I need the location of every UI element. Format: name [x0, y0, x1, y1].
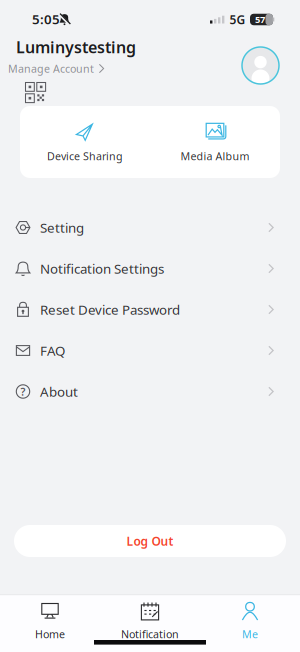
button[interactable]: Me	[203, 598, 297, 644]
staticText: FAQ	[40, 342, 65, 359]
staticText: Device Sharing	[47, 149, 123, 163]
staticText: About	[40, 383, 78, 400]
staticText: Me	[242, 627, 258, 641]
button[interactable]: QR code	[24, 81, 46, 103]
staticText: Notification Settings	[40, 260, 164, 277]
button[interactable]: Device Sharing	[30, 110, 140, 174]
button[interactable]: Manage Account	[8, 61, 104, 76]
staticText: Manage Account	[8, 61, 94, 76]
staticText: Reset Device Password	[40, 301, 180, 318]
staticText: Log Out	[126, 533, 173, 549]
button[interactable]: Media Album	[160, 110, 270, 174]
button[interactable]: Notification Settings	[0, 248, 300, 289]
button[interactable]: Profile photo	[241, 46, 279, 84]
staticText: 5:05	[32, 10, 60, 28]
staticText: ?	[20, 384, 25, 399]
staticText: Setting	[40, 219, 84, 236]
button[interactable]: Home	[3, 598, 97, 644]
button[interactable]: Log Out	[14, 525, 286, 557]
staticText: Notification	[121, 627, 179, 641]
staticText: 57	[255, 13, 265, 26]
staticText: Luminystesting	[16, 36, 136, 58]
button[interactable]: ?	[0, 371, 300, 412]
staticText: Media Album	[180, 149, 249, 163]
button[interactable]: Setting	[0, 207, 300, 248]
button[interactable]: Notification	[103, 598, 197, 644]
button[interactable]: Reset Device Password	[0, 289, 300, 330]
staticText: 5G	[229, 11, 245, 27]
button[interactable]: FAQ	[0, 330, 300, 371]
staticText: Home	[35, 627, 65, 641]
